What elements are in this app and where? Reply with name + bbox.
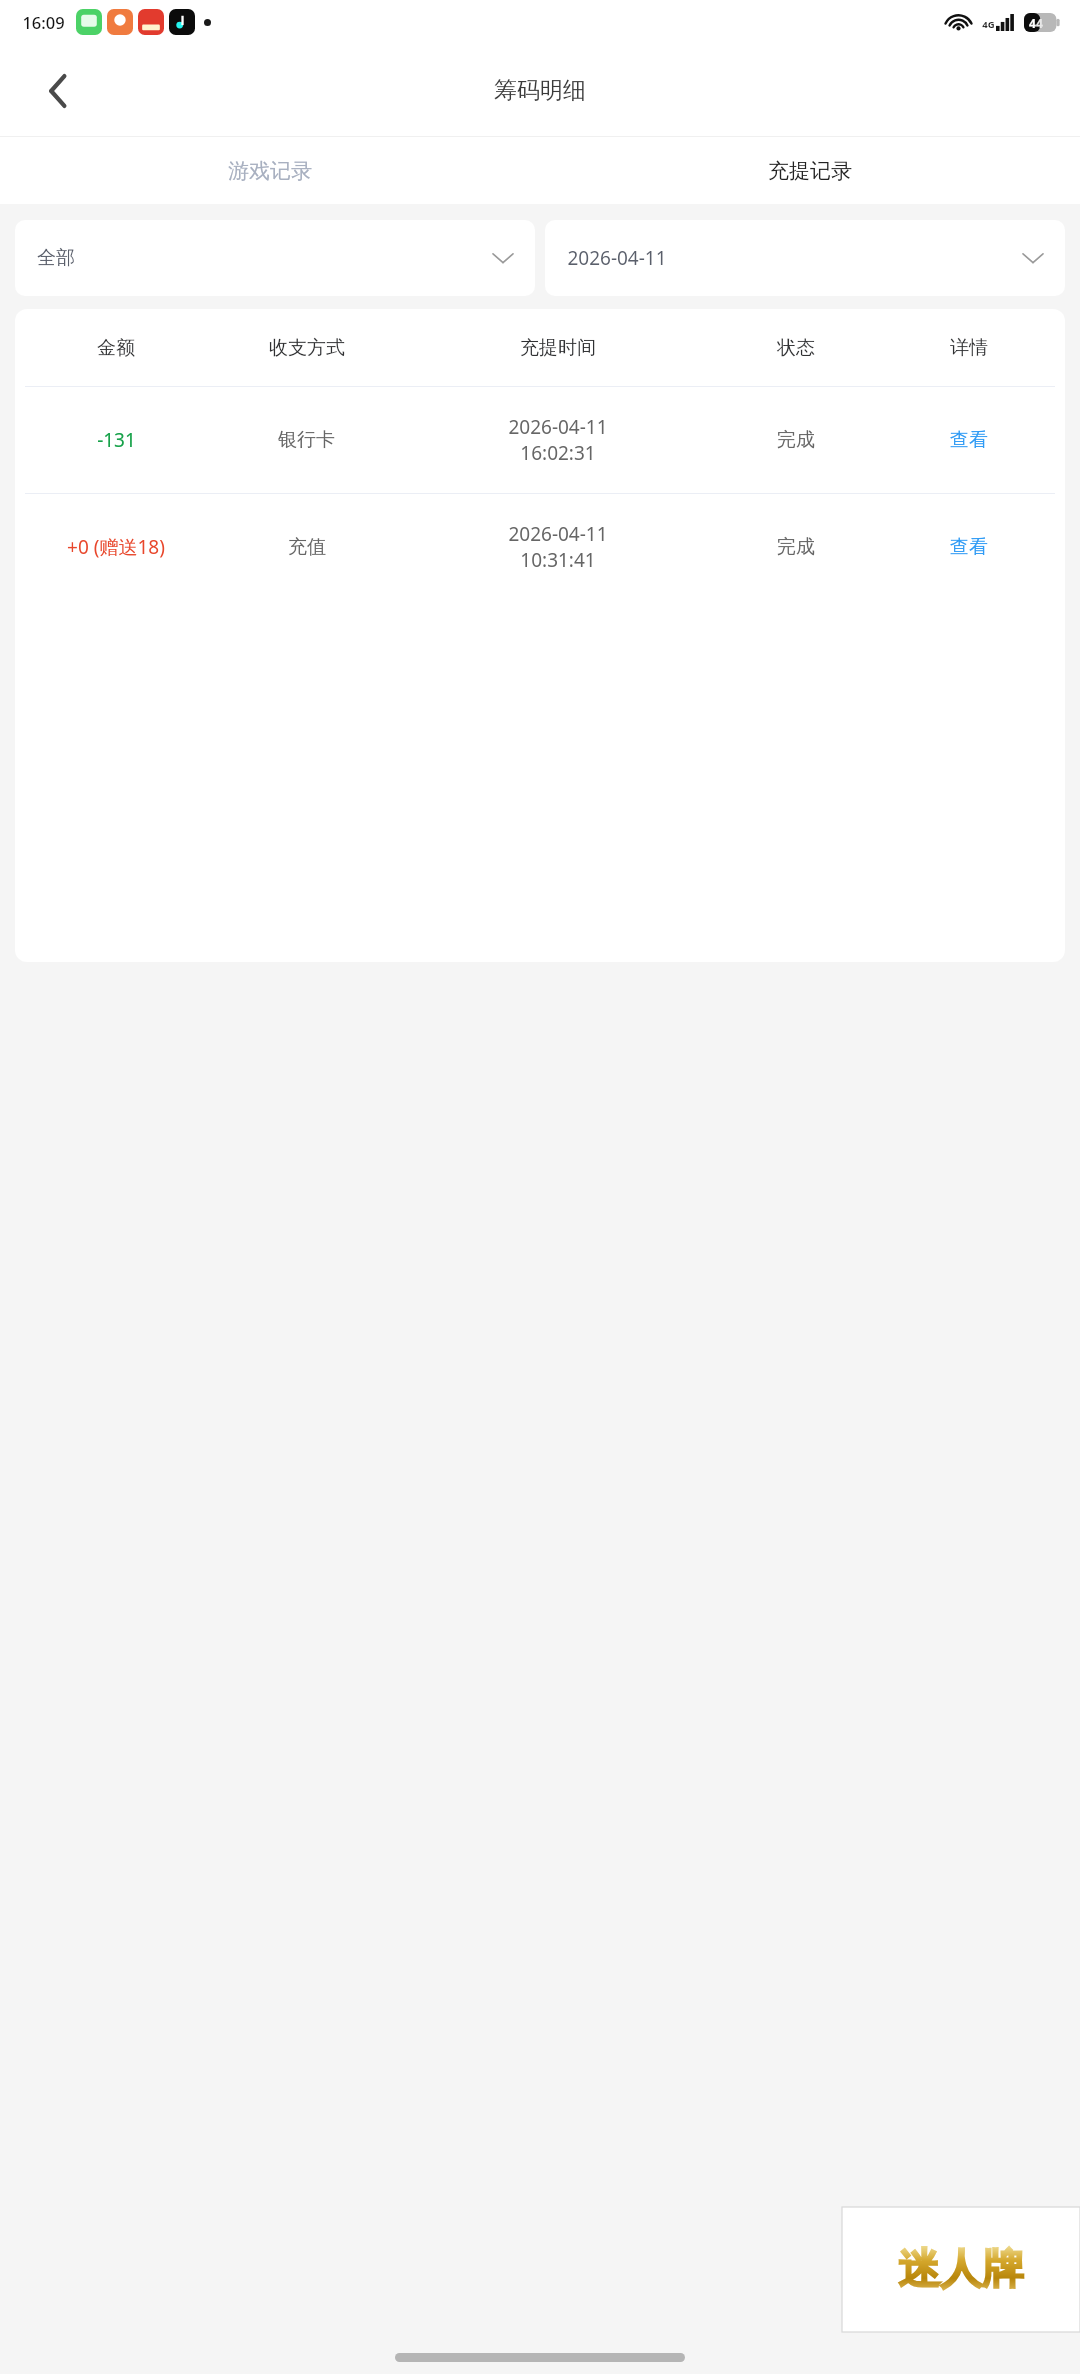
button[interactable]: -131 xyxy=(15,387,1065,493)
staticText: 2026-04-11 xyxy=(567,245,667,271)
staticText: 16:09 xyxy=(22,11,65,33)
staticText: 10:31:41 xyxy=(520,547,596,573)
staticText: 详情 xyxy=(950,336,988,360)
staticText: 筹码明细 xyxy=(494,76,586,105)
staticText: 4 xyxy=(1029,15,1036,31)
staticText: 完成 xyxy=(777,428,815,452)
staticText: 完成 xyxy=(777,535,815,559)
button[interactable]: 充提记录 xyxy=(540,137,1080,204)
button[interactable]: 全部 xyxy=(15,220,535,296)
button[interactable]: +0 (赠送18) xyxy=(15,494,1065,600)
staticText: 全部 xyxy=(37,246,75,270)
staticText: 2026-04-11 xyxy=(508,521,608,547)
staticText: 16:02:31 xyxy=(520,440,596,466)
button[interactable]: 2026-04-11 xyxy=(545,220,1065,296)
staticText: 充值 xyxy=(288,535,326,559)
staticText: 充提时间 xyxy=(520,336,596,360)
staticText: 游戏记录 xyxy=(228,158,312,184)
staticText: +0 (赠送18) xyxy=(67,534,165,560)
button[interactable]: 查看 xyxy=(882,494,1055,600)
button[interactable]: Back xyxy=(34,67,82,115)
staticText: 状态 xyxy=(777,336,815,360)
staticText: 金额 xyxy=(97,336,135,360)
staticText: -131 xyxy=(97,427,136,453)
staticText: 4 xyxy=(1036,15,1043,31)
staticText: 查看 xyxy=(950,428,988,452)
staticText: 2026-04-11 xyxy=(508,414,608,440)
button[interactable]: 迷人牌 logo xyxy=(842,2207,1080,2332)
staticText: 银行卡 xyxy=(278,428,335,452)
button[interactable]: 游戏记录 xyxy=(0,137,540,204)
staticText: 充提记录 xyxy=(768,158,852,184)
button[interactable]: 查看 xyxy=(882,387,1055,493)
staticText: 查看 xyxy=(950,535,988,559)
staticText: 迷人牌 xyxy=(898,2243,1024,2296)
staticText: 收支方式 xyxy=(269,336,345,360)
staticText: 4G xyxy=(982,18,995,31)
